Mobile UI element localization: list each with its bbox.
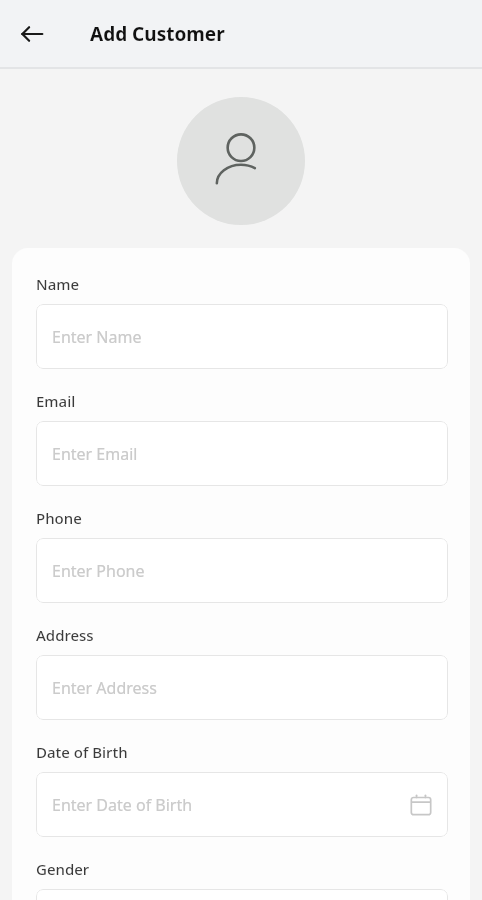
staticText: Name [36, 274, 80, 294]
staticText: Address [36, 625, 94, 645]
staticText: Gender [36, 859, 90, 879]
staticText: Enter Email [52, 443, 432, 465]
button[interactable]: Enter Phone [36, 538, 448, 603]
staticText: Enter Name [52, 326, 432, 348]
staticText: Enter Address [52, 677, 432, 699]
button[interactable]: Select Gender [36, 889, 448, 900]
staticText: Date of Birth [36, 742, 128, 762]
button[interactable]: Back [10, 12, 54, 56]
staticText: Enter Phone [52, 560, 432, 582]
button[interactable]: Enter Address [36, 655, 448, 720]
button[interactable]: Enter Email [36, 421, 448, 486]
button[interactable]: Enter Date of Birth [36, 772, 448, 837]
button[interactable]: Enter Name [36, 304, 448, 369]
staticText: Phone [36, 508, 82, 528]
other: Pick date [410, 794, 432, 816]
staticText: Email [36, 391, 76, 411]
staticText: Add Customer [90, 21, 225, 47]
staticText: Enter Date of Birth [52, 794, 410, 816]
button[interactable]: Profile photo [177, 97, 305, 225]
